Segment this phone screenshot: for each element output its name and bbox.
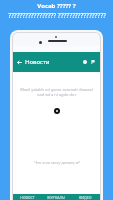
button[interactable]: Record audio [54, 108, 60, 114]
staticText: ЖУРНАЛЫ [47, 195, 66, 200]
button[interactable]: ЖУРНАЛЫ [42, 194, 71, 200]
staticText: ВИДЕО [79, 195, 92, 200]
staticText: nad ad a ni agdo do r [37, 92, 77, 97]
button[interactable]: Information [81, 58, 89, 66]
staticText: Новости [25, 58, 50, 66]
staticText: НОВОСТ [20, 195, 35, 200]
button[interactable]: НОВОСТ [13, 194, 42, 200]
staticText: Maxil yatakh ed garva avumati chaasa! [20, 87, 93, 92]
button[interactable]: Back [15, 58, 24, 67]
staticText: ????????????????? ????????????????? [8, 11, 106, 20]
button[interactable]: ВИДЕО [71, 194, 100, 200]
staticText: Vocab ????? ? [37, 2, 76, 10]
staticText: Что я не могу делать в? [34, 160, 80, 165]
button[interactable]: Bookmark [89, 58, 97, 66]
